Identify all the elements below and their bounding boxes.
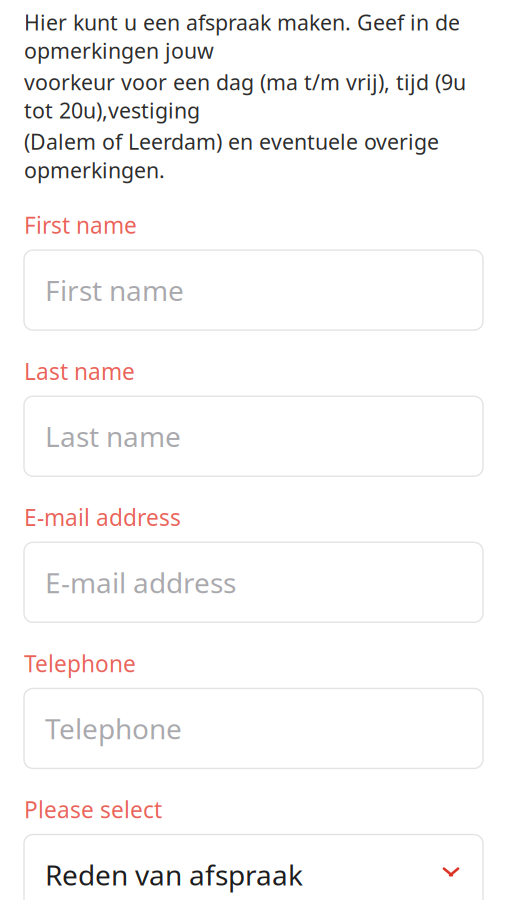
button[interactable]: First name <box>24 250 483 330</box>
staticText: Last name <box>45 418 181 455</box>
staticText: First name <box>24 210 137 240</box>
staticText: Please select <box>24 794 162 824</box>
staticText: Telephone <box>24 648 136 678</box>
staticText: Reden van afspraak <box>45 856 303 893</box>
staticText: Telephone <box>45 710 182 747</box>
staticText: voorkeur voor een dag (ma t/m vrij), tij… <box>24 68 466 124</box>
button[interactable]: Last name <box>24 396 483 476</box>
staticText: Last name <box>24 356 135 386</box>
button[interactable]: Reden van afspraak <box>24 834 483 900</box>
staticText: E-mail address <box>45 564 236 601</box>
button[interactable]: Telephone <box>24 688 483 768</box>
staticText: Hier kunt u een afspraak maken. Geef in … <box>24 8 460 65</box>
staticText: (Dalem of Leerdam) en eventuele overige … <box>24 127 439 184</box>
button[interactable]: E-mail address <box>24 542 483 622</box>
staticText: E-mail address <box>24 502 181 532</box>
staticText: First name <box>45 271 184 309</box>
